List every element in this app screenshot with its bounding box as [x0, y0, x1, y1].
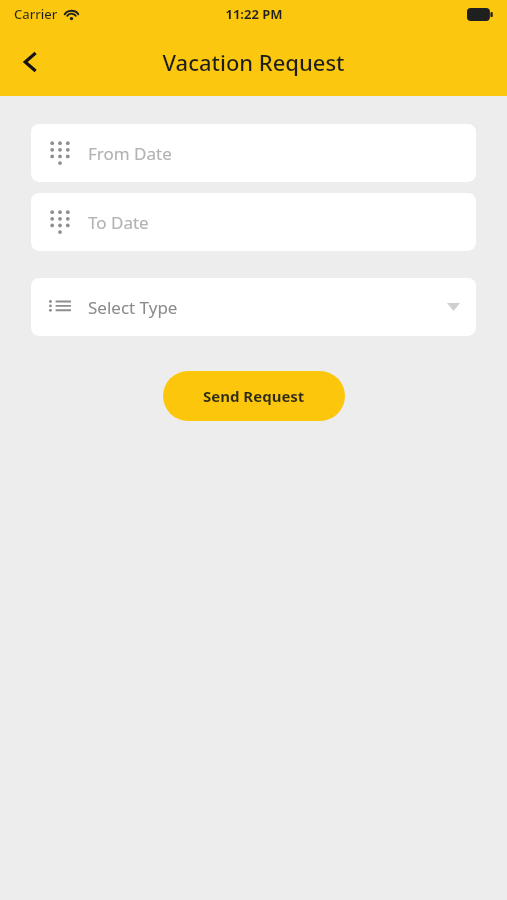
- button[interactable]: Send Request: [163, 371, 345, 421]
- staticText: Send Request: [203, 386, 305, 406]
- staticText: Vacation Request: [162, 47, 345, 77]
- button[interactable]: To Date: [31, 193, 476, 251]
- button[interactable]: Back: [6, 38, 54, 86]
- staticText: 11:22 PM: [225, 5, 283, 23]
- staticText: To Date: [88, 211, 476, 234]
- button[interactable]: From Date: [31, 124, 476, 182]
- staticText: Select Type: [88, 296, 430, 319]
- staticText: Carrier: [14, 5, 58, 23]
- button[interactable]: Select Type: [31, 278, 476, 336]
- staticText: From Date: [88, 142, 476, 165]
